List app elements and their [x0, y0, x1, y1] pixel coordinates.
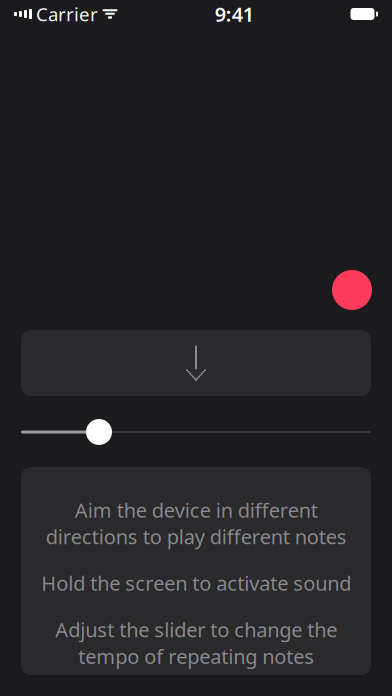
staticText: Adjust the slider to change the tempo of…	[55, 616, 337, 669]
staticText: Aim the device in different directions t…	[45, 497, 346, 550]
button[interactable]: Note direction, down	[21, 330, 371, 396]
staticText: Hold the screen to activate sound	[41, 570, 351, 596]
button[interactable]: Tempo slider	[21, 419, 371, 445]
staticText: 9:41	[215, 1, 254, 27]
staticText: Carrier	[36, 2, 98, 26]
